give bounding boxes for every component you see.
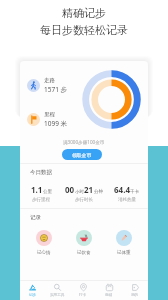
staticText: 步行时长 [75, 197, 93, 203]
staticText: 分钟 [94, 189, 103, 195]
staticText: 实用工具 [50, 293, 65, 298]
staticText: 00 [65, 184, 75, 195]
staticText: 64.4 [114, 184, 130, 195]
staticText: 每日步数轻松记录 [40, 23, 128, 37]
staticText: 商城 [105, 293, 113, 298]
staticText: 满3000步赚100金币 [63, 139, 105, 145]
staticText: 今日数据 [30, 169, 52, 176]
staticText: 精确记步 [62, 6, 106, 20]
button[interactable]: 64.4 [105, 184, 148, 203]
button[interactable]: 里程 [27, 111, 68, 128]
button[interactable]: 记心情 [36, 230, 52, 256]
staticText: 领取金币 [72, 152, 92, 158]
staticText: 记饮食 [77, 250, 91, 256]
button[interactable]: 记饮食 [76, 230, 92, 256]
button[interactable]: 1.1 [20, 184, 62, 203]
button[interactable]: Profile [122, 280, 148, 300]
staticText: 我的 [131, 293, 139, 298]
button[interactable]: 记体重 [116, 230, 132, 256]
button[interactable]: Shop [96, 280, 122, 300]
staticText: 小时 [75, 189, 84, 195]
button[interactable]: Tools [45, 280, 70, 300]
staticText: 千卡 [130, 189, 139, 195]
staticText: 走路 [44, 77, 55, 84]
staticText: 1099 米 [44, 119, 68, 128]
staticText: 消耗热量 [118, 197, 136, 203]
button[interactable]: Check in [70, 280, 96, 300]
button[interactable]: 走路 [27, 77, 68, 94]
button[interactable]: 00 [62, 184, 105, 203]
button[interactable]: Step counter [20, 280, 45, 300]
staticText: 记体重 [117, 250, 131, 256]
staticText: 记步 [29, 293, 37, 298]
staticText: 1.1 [31, 184, 43, 195]
staticText: 记录 [30, 214, 41, 221]
button[interactable]: 领取金币 [62, 149, 102, 160]
staticText: 里程 [44, 111, 55, 118]
staticText: 打卡 [79, 293, 87, 298]
staticText: 记心情 [37, 250, 51, 256]
staticText: 公里 [43, 189, 52, 195]
staticText: 1571 步 [44, 85, 68, 94]
staticText: 21 [84, 184, 94, 195]
staticText: 步行里程 [32, 197, 50, 203]
